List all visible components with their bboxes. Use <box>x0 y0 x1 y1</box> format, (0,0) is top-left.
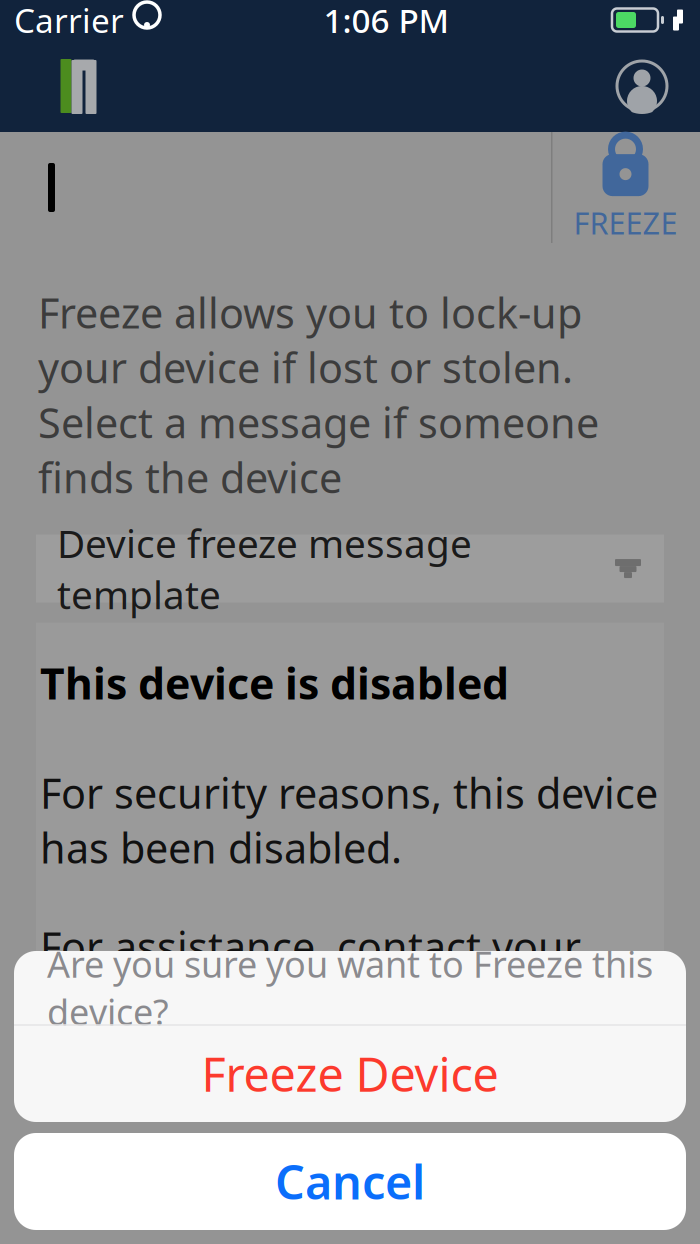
staticText: 1:06 PM <box>323 0 449 42</box>
button[interactable]: FREEZE <box>552 132 699 243</box>
staticText: Freeze Device <box>201 1043 498 1105</box>
staticText: For assistance, contact your administrat… <box>40 919 581 1029</box>
staticText: Carrier <box>14 0 124 42</box>
staticText: For security reasons, this device has be… <box>40 765 658 875</box>
button[interactable]: Device freeze message template <box>36 535 664 603</box>
staticText: Freeze allows you to lock-up your device… <box>38 285 599 505</box>
button[interactable]: Cancel <box>14 1133 686 1230</box>
button[interactable]: Account <box>614 58 670 114</box>
button[interactable]: Back <box>0 132 110 243</box>
staticText: Device freeze message template <box>57 517 472 620</box>
staticText: Cancel <box>275 1150 425 1212</box>
button[interactable]: Freeze Device <box>14 1026 686 1122</box>
staticText: FREEZE <box>573 202 677 243</box>
staticText: This device is disabled <box>40 655 509 711</box>
staticText: Are you sure you want to Freeze this dev… <box>47 940 653 1035</box>
